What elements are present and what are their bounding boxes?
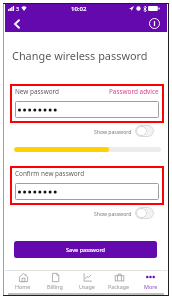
staticText: Change wireless password — [12, 48, 148, 63]
staticText: New password — [15, 87, 59, 96]
staticText: Usage — [79, 283, 95, 290]
button[interactable]: Show password — [91, 124, 161, 140]
button[interactable] — [15, 101, 159, 118]
staticText: 10:02 — [71, 5, 87, 13]
button[interactable]: Home — [7, 271, 39, 293]
staticText: Package — [108, 283, 130, 290]
staticText: Home — [15, 283, 31, 290]
button[interactable]: Package — [103, 271, 135, 293]
button[interactable]: More — [135, 271, 166, 293]
staticText: Save password — [66, 246, 106, 254]
staticText: Show password — [94, 211, 132, 218]
button[interactable]: Usage — [71, 271, 103, 293]
button[interactable]: Show password — [91, 206, 161, 222]
button[interactable]: Back — [8, 15, 25, 32]
button[interactable]: Save password — [14, 241, 157, 258]
staticText: Confirm new password — [15, 169, 85, 178]
button[interactable] — [15, 183, 159, 200]
button[interactable]: Information — [146, 15, 163, 32]
staticText: More — [144, 283, 158, 290]
staticText: Billing — [47, 283, 63, 290]
button[interactable]: Billing — [39, 271, 71, 293]
staticText: 3 — [16, 5, 19, 12]
staticText: Show password — [94, 129, 132, 136]
button[interactable]: Password advice — [109, 87, 159, 96]
